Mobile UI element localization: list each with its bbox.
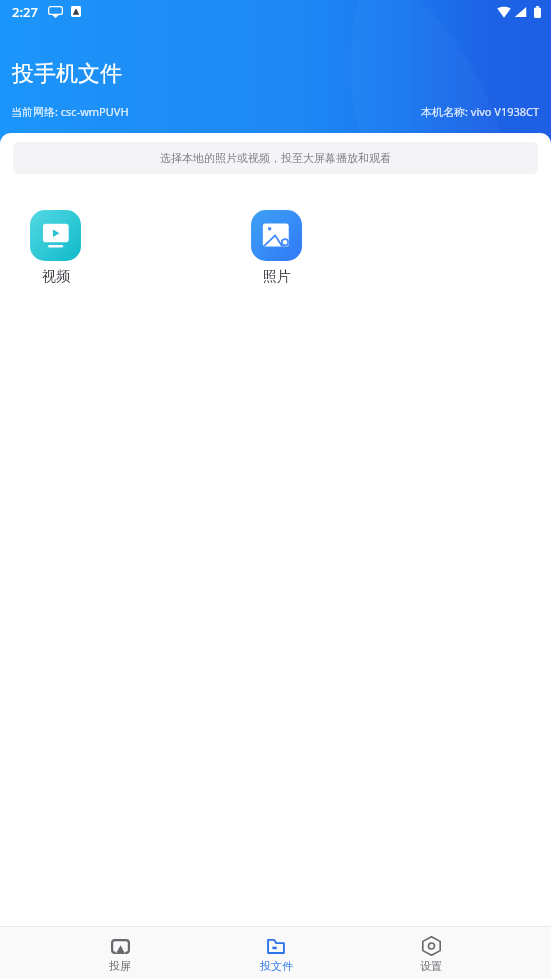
staticText: 2:27 <box>12 3 38 21</box>
staticText: 当前网络: csc-wmPUVH <box>11 104 129 119</box>
button[interactable]: 视频 <box>15 210 96 286</box>
staticText: 设置 <box>420 959 442 973</box>
staticText: 选择本地的照片或视频，投至大屏幕播放和观看 <box>160 151 391 165</box>
button[interactable]: 投文件 <box>241 927 311 979</box>
staticText: 投屏 <box>109 959 131 973</box>
staticText: 视频 <box>42 268 70 286</box>
button[interactable]: 投屏 <box>85 927 155 979</box>
staticText: 照片 <box>263 268 291 286</box>
button[interactable]: 设置 <box>396 927 466 979</box>
staticText: 投手机文件 <box>12 60 122 88</box>
staticText: 本机名称: vivo V1938CT <box>421 104 540 119</box>
button[interactable]: 照片 <box>236 210 317 286</box>
staticText: 投文件 <box>260 959 293 973</box>
